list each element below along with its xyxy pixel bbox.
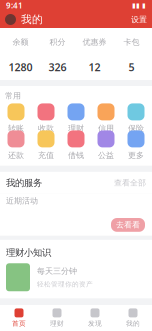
staticText: 更多 xyxy=(128,150,144,160)
staticText: 我的 xyxy=(126,319,140,328)
staticText: 发现 xyxy=(88,319,102,328)
staticText: 我的 xyxy=(21,13,43,26)
staticText: 查看全部 xyxy=(114,178,146,188)
button[interactable]: 我的 xyxy=(114,305,152,331)
staticText: 我的服务 xyxy=(6,177,42,189)
staticText: 常用 xyxy=(5,91,21,101)
staticText: 5 xyxy=(128,60,134,74)
button[interactable]: 公益 xyxy=(91,132,121,159)
button[interactable]: 收款 xyxy=(31,105,61,132)
staticText: 保险 xyxy=(128,123,144,133)
staticText: 余额 xyxy=(12,37,28,47)
button[interactable]: 去看看 xyxy=(111,218,145,232)
staticText: 12 xyxy=(88,60,100,74)
button[interactable]: 查看全部 xyxy=(114,178,146,188)
staticText: 理财小知识 xyxy=(6,247,51,258)
staticText: 收款 xyxy=(38,123,54,133)
button[interactable]: 发现 xyxy=(76,305,114,331)
staticText: 还款 xyxy=(8,150,24,160)
button[interactable]: 转账 xyxy=(1,105,31,132)
button[interactable]: 充值 xyxy=(31,132,61,159)
button[interactable]: 理财小知识 xyxy=(0,240,152,298)
staticText: 每天三分钟 xyxy=(37,266,77,276)
button[interactable]: 卡包 xyxy=(113,35,150,73)
staticText: 轻松管理你的资产 xyxy=(37,280,93,288)
button[interactable]: 还款 xyxy=(1,132,31,159)
button[interactable]: 更多 xyxy=(121,132,151,159)
staticText: 借钱 xyxy=(68,150,84,160)
staticText: ▮▮ ▮ xyxy=(132,2,146,9)
button[interactable]: 积分 xyxy=(39,35,76,73)
staticText: 近期活动 xyxy=(6,196,38,206)
staticText: 公益 xyxy=(98,150,114,160)
button[interactable]: 余额 xyxy=(2,35,39,73)
staticText: 326 xyxy=(48,60,66,74)
button[interactable]: 信用 xyxy=(91,105,121,132)
button[interactable]: 借钱 xyxy=(61,132,91,159)
button[interactable]: Profile xyxy=(5,14,16,25)
staticText: 9:41 xyxy=(6,0,23,11)
staticText: 1280 xyxy=(8,60,32,74)
button[interactable]: 优惠券 xyxy=(76,35,113,73)
staticText: 理财 xyxy=(68,123,84,133)
button[interactable]: 保险 xyxy=(121,105,151,132)
button[interactable]: 首页 xyxy=(0,305,38,331)
staticText: 去看看 xyxy=(116,220,140,230)
button[interactable]: 理财 xyxy=(38,305,76,331)
staticText: 转账 xyxy=(8,123,24,133)
staticText: 理财 xyxy=(50,319,64,328)
button[interactable]: 理财 xyxy=(61,105,91,132)
button[interactable]: Settings xyxy=(131,15,147,24)
staticText: 设置 xyxy=(131,15,147,24)
staticText: 卡包 xyxy=(123,37,139,47)
staticText: 充值 xyxy=(38,150,54,160)
staticText: 首页 xyxy=(12,319,26,328)
staticText: 信用 xyxy=(98,123,114,133)
staticText: 优惠券 xyxy=(82,37,106,47)
staticText: 积分 xyxy=(49,37,65,47)
